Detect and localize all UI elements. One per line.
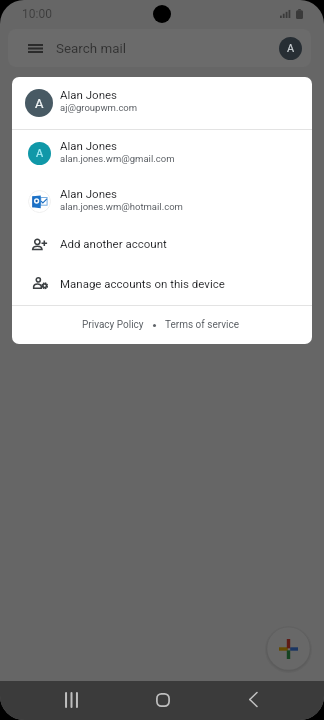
button[interactable]: Compose: [265, 625, 312, 672]
button[interactable]: A: [12, 77, 312, 129]
staticText: Add another account: [60, 237, 167, 250]
staticText: alan.jones.wm@gmail.com: [60, 153, 175, 164]
staticText: aj@groupwm.com: [60, 102, 138, 113]
staticText: 10:00: [22, 7, 52, 21]
staticText: Alan Jones: [60, 88, 118, 101]
button[interactable]: Recent apps: [59, 687, 84, 712]
button[interactable]: Account: [279, 37, 302, 60]
staticText: A: [36, 147, 44, 160]
staticText: Search mail: [56, 41, 126, 57]
staticText: Alan Jones: [60, 187, 118, 200]
staticText: alan.jones.wm@hotmail.com: [60, 201, 183, 212]
staticText: A: [287, 42, 295, 55]
button[interactable]: A: [12, 130, 312, 177]
staticText: A: [35, 96, 44, 111]
staticText: Manage accounts on this device: [60, 277, 225, 290]
button[interactable]: Alan Jones: [12, 177, 312, 225]
button[interactable]: Home: [150, 687, 175, 712]
button[interactable]: Open navigation drawer: [8, 29, 311, 67]
button[interactable]: Manage accounts on this device: [12, 265, 312, 305]
button[interactable]: Back: [241, 687, 266, 712]
button[interactable]: Add another account: [12, 225, 312, 265]
button[interactable]: Open navigation drawer: [23, 36, 47, 60]
staticText: Alan Jones: [60, 139, 118, 152]
button[interactable]: Privacy Policy: [82, 319, 144, 331]
button[interactable]: Terms of service: [165, 319, 239, 331]
